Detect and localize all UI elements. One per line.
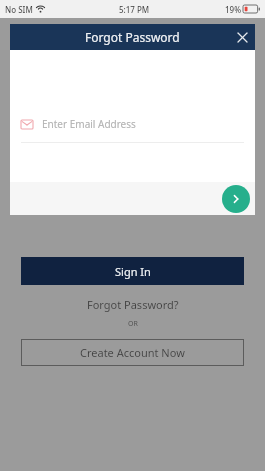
staticText: OR [128,319,138,329]
staticText: Forgot Password? [87,297,179,312]
staticText: Forgot Password [85,29,180,45]
button[interactable]: Sign In [21,257,244,285]
button[interactable]: Create Account Now [21,339,244,366]
staticText: Enter Email Address [42,117,136,131]
button[interactable]: Submit [222,185,250,213]
button[interactable]: Forgot Password? [21,294,244,314]
staticText: Create Account Now [80,345,185,360]
button[interactable]: Close [232,27,252,47]
staticText: 19% [225,4,241,15]
staticText: No SIM [5,4,33,15]
staticText: Sign In [115,264,151,279]
button[interactable]: Enter Email Address [21,115,244,133]
staticText: 5:17 PM [119,4,150,15]
